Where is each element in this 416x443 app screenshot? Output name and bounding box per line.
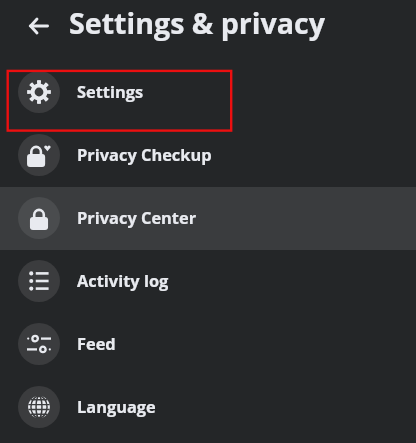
staticText: Feed [77, 332, 116, 354]
button[interactable]: Privacy Checkup [0, 124, 416, 187]
staticText: Settings & privacy [69, 3, 325, 42]
staticText: Privacy Checkup [77, 143, 212, 165]
staticText: Activity log [77, 269, 169, 291]
staticText: Settings [77, 80, 144, 102]
button[interactable]: Language [0, 376, 416, 439]
button[interactable]: Back [25, 12, 53, 40]
staticText: Language [77, 395, 156, 417]
button[interactable]: Activity log [0, 250, 416, 313]
staticText: Privacy Center [77, 206, 197, 228]
button[interactable]: Feed [0, 313, 416, 376]
button[interactable]: Privacy Center [0, 187, 416, 250]
button[interactable]: Settings [0, 61, 416, 124]
